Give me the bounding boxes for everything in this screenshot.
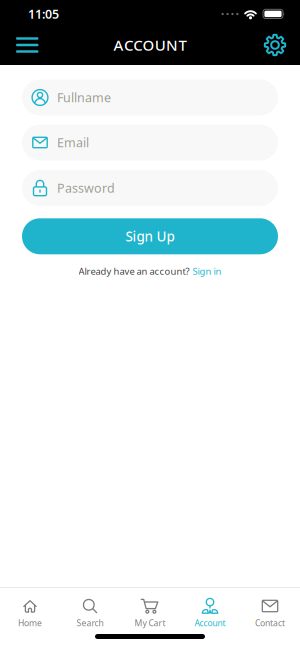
- staticText: Sign in: [192, 265, 221, 278]
- staticText: Already have an account?: [78, 265, 189, 278]
- staticText: Fullname: [57, 89, 111, 106]
- textField[interactable]: Email: [57, 134, 163, 151]
- staticText: ACCOUNT: [114, 35, 186, 55]
- button[interactable]: Menu: [0, 37, 38, 53]
- staticText: 11:05: [28, 5, 59, 22]
- staticText: Home: [18, 617, 42, 629]
- button[interactable]: Sign in: [192, 265, 221, 278]
- button[interactable]: Account: [180, 598, 240, 629]
- button[interactable]: Home: [0, 598, 60, 629]
- staticText: Search: [76, 617, 103, 629]
- textField[interactable]: Fullname: [57, 89, 163, 106]
- staticText: My Cart: [134, 617, 165, 629]
- staticText: Email: [57, 134, 89, 151]
- staticText: Password: [57, 179, 115, 196]
- button[interactable]: Sign Up: [22, 218, 278, 254]
- button[interactable]: Contact: [240, 598, 300, 629]
- button[interactable]: Settings: [264, 34, 300, 56]
- button[interactable]: Search: [60, 598, 120, 629]
- staticText: Contact: [255, 617, 285, 629]
- staticText: Account: [194, 617, 225, 629]
- staticText: Sign Up: [125, 227, 174, 245]
- button[interactable]: My Cart: [120, 598, 180, 629]
- textField[interactable]: Password: [57, 179, 163, 196]
